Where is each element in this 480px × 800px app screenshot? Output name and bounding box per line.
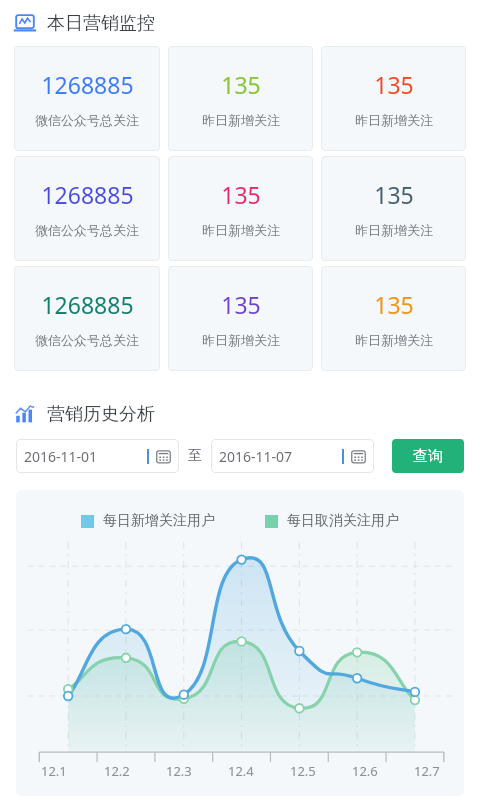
staticText: 每日新增关注用户 bbox=[103, 512, 215, 530]
staticText: 微信公众号总关注 bbox=[35, 112, 139, 128]
button[interactable]: 2016-11-01 bbox=[16, 439, 179, 473]
button[interactable]: 1268885 bbox=[14, 46, 160, 151]
staticText: 昨日新增关注 bbox=[355, 332, 433, 348]
staticText: 1268885 bbox=[41, 179, 134, 210]
staticText: 昨日新增关注 bbox=[202, 332, 280, 348]
staticText: 135 bbox=[374, 69, 414, 100]
staticText: 135 bbox=[221, 69, 261, 100]
staticText: 本日营销监控 bbox=[47, 12, 155, 35]
staticText: 1268885 bbox=[41, 69, 134, 100]
staticText: 每日取消关注用户 bbox=[287, 512, 399, 530]
staticText: 1268885 bbox=[41, 289, 134, 320]
button[interactable]: 2016-11-07 bbox=[211, 439, 374, 473]
staticText: 昨日新增关注 bbox=[355, 112, 433, 128]
staticText: 至 bbox=[188, 447, 202, 465]
staticText: 12.4 bbox=[228, 762, 254, 780]
staticText: 微信公众号总关注 bbox=[35, 332, 139, 348]
staticText: 12.2 bbox=[104, 762, 130, 780]
other: Pick date bbox=[351, 449, 366, 464]
button[interactable]: 135 bbox=[168, 156, 313, 261]
button[interactable]: 查询 bbox=[392, 439, 464, 473]
staticText: 昨日新增关注 bbox=[202, 222, 280, 238]
button[interactable]: 1268885 bbox=[14, 156, 160, 261]
button[interactable]: 1268885 bbox=[14, 266, 160, 371]
button[interactable]: 135 bbox=[168, 266, 313, 371]
button[interactable]: 135 bbox=[168, 46, 313, 151]
staticText: 2016-11-07 bbox=[219, 447, 342, 466]
staticText: 12.3 bbox=[166, 762, 192, 780]
staticText: 昨日新增关注 bbox=[355, 222, 433, 238]
staticText: 2016-11-01 bbox=[24, 447, 147, 466]
staticText: 12.6 bbox=[352, 762, 378, 780]
staticText: 12.7 bbox=[414, 762, 440, 780]
staticText: 12.5 bbox=[290, 762, 316, 780]
staticText: 135 bbox=[374, 179, 414, 210]
staticText: 微信公众号总关注 bbox=[35, 222, 139, 238]
staticText: 12.1 bbox=[41, 762, 67, 780]
other: Pick date bbox=[156, 449, 171, 464]
staticText: 查询 bbox=[413, 447, 443, 466]
staticText: 昨日新增关注 bbox=[202, 112, 280, 128]
button[interactable]: 135 bbox=[321, 266, 466, 371]
staticText: 营销历史分析 bbox=[47, 403, 155, 426]
button[interactable]: 135 bbox=[321, 156, 466, 261]
staticText: 135 bbox=[221, 179, 261, 210]
button[interactable]: 135 bbox=[321, 46, 466, 151]
staticText: 135 bbox=[374, 289, 414, 320]
staticText: 135 bbox=[221, 289, 261, 320]
